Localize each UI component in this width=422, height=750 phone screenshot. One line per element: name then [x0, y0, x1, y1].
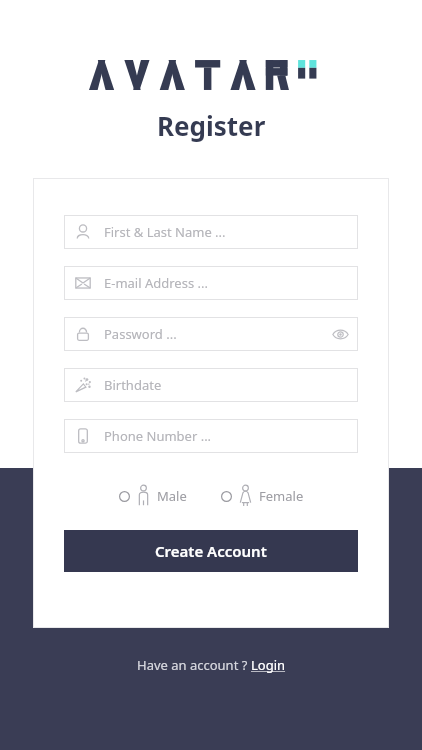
- staticText: Create Account: [155, 541, 267, 561]
- button[interactable]: Show password: [326, 320, 354, 348]
- button[interactable]: Male: [119, 485, 187, 507]
- staticText: Have an account ?: [137, 656, 251, 674]
- button[interactable]: Login: [251, 656, 286, 674]
- staticText: Birthdate: [104, 376, 358, 394]
- button[interactable]: Birthdate: [64, 368, 358, 402]
- button[interactable]: E-mail Address ...: [64, 266, 358, 300]
- staticText: First & Last Name ...: [104, 223, 358, 241]
- staticText: Female: [259, 487, 304, 505]
- staticText: E-mail Address ...: [104, 274, 358, 292]
- staticText: Login: [251, 656, 286, 674]
- staticText: Password ...: [104, 325, 326, 343]
- button[interactable]: Female: [221, 485, 304, 507]
- button[interactable]: Password ...: [64, 317, 358, 351]
- button[interactable]: Phone Number ...: [64, 419, 358, 453]
- button[interactable]: Create Account: [64, 530, 358, 572]
- button[interactable]: First & Last Name ...: [64, 215, 358, 249]
- staticText: Phone Number ...: [104, 427, 358, 445]
- staticText: Male: [157, 487, 187, 505]
- staticText: Register: [157, 108, 266, 143]
